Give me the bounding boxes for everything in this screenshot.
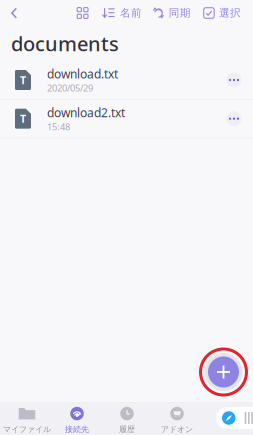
staticText: T <box>20 73 26 87</box>
button[interactable]: Back <box>0 0 28 26</box>
staticText: 2020/05/29 <box>47 82 93 94</box>
staticText: T <box>20 112 26 126</box>
button[interactable]: T <box>0 61 253 99</box>
staticText: download.txt <box>47 66 118 82</box>
button[interactable]: マイファイル <box>2 403 52 435</box>
button[interactable]: アドオン <box>152 403 202 435</box>
button[interactable]: More options <box>219 64 249 96</box>
staticText: アドオン <box>161 424 193 434</box>
button[interactable]: 履歴 <box>102 403 152 435</box>
button[interactable]: More options <box>219 103 249 135</box>
staticText: download2.txt <box>47 104 125 120</box>
button[interactable]: 選択 <box>204 1 241 25</box>
button[interactable]: 名前 <box>102 1 142 25</box>
staticText: 同期 <box>169 6 191 19</box>
staticText: 履歴 <box>119 424 135 434</box>
button[interactable]: 同期 <box>153 1 191 25</box>
staticText: 接続先 <box>65 424 89 434</box>
staticText: documents <box>11 30 119 57</box>
staticText: 15:48 <box>47 120 70 133</box>
button[interactable]: Add <box>198 347 248 397</box>
button[interactable]: T <box>0 100 253 138</box>
staticText: 名前 <box>120 6 142 19</box>
staticText: マイファイル <box>3 424 51 434</box>
staticText: 選択 <box>219 6 241 19</box>
button[interactable]: 接続先 <box>52 403 102 435</box>
button[interactable]: Grid view <box>77 1 88 25</box>
button[interactable]: Safari <box>216 407 253 429</box>
